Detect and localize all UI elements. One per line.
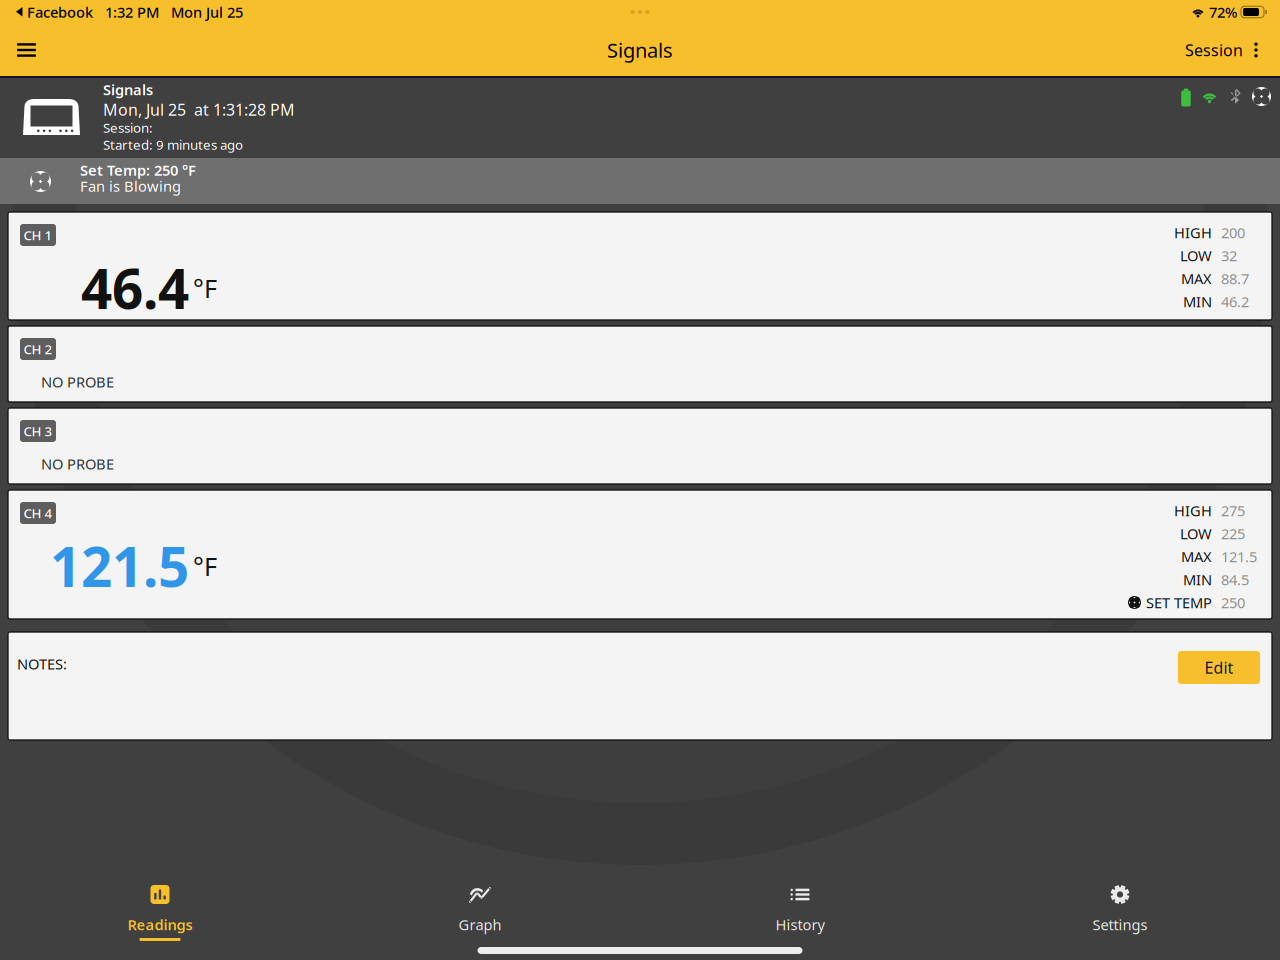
staticText: 84.5: [1221, 570, 1249, 589]
staticText: MIN: [1183, 292, 1212, 311]
staticText: MAX: [1181, 269, 1212, 288]
staticText: CH 4: [23, 504, 52, 522]
staticText: MAX: [1181, 547, 1212, 566]
staticText: 121.5: [50, 529, 189, 602]
staticText: History: [775, 915, 824, 934]
staticText: 88.7: [1221, 269, 1249, 288]
button[interactable]: Edit: [1178, 651, 1260, 684]
button[interactable]: Session: [1185, 31, 1258, 69]
staticText: 1:32 PM: [93, 2, 159, 22]
staticText: 72%: [1209, 2, 1237, 22]
staticText: Settings: [1092, 915, 1147, 934]
staticText: Set Temp: 250 °F: [80, 160, 196, 180]
staticText: Session: [1185, 39, 1243, 61]
staticText: Graph: [458, 915, 501, 934]
staticText: LOW: [1180, 246, 1212, 265]
staticText: 200: [1221, 223, 1245, 242]
staticText: °F: [193, 549, 217, 583]
button[interactable]: Settings: [960, 875, 1280, 960]
staticText: NOTES:: [17, 654, 67, 673]
staticText: Mon, Jul 25 at 1:31:28 PM: [103, 99, 295, 120]
staticText: 121.5: [1221, 547, 1257, 566]
staticText: HIGH: [1174, 223, 1212, 242]
staticText: Readings: [127, 915, 192, 934]
staticText: NO PROBE: [41, 454, 114, 473]
staticText: Started: 9 minutes ago: [103, 136, 243, 153]
staticText: CH 3: [23, 422, 52, 440]
staticText: Signals: [103, 80, 153, 99]
staticText: 32: [1221, 246, 1237, 265]
staticText: 46.2: [1221, 292, 1249, 311]
staticText: °F: [193, 271, 217, 305]
staticText: MIN: [1183, 570, 1212, 589]
staticText: NO PROBE: [41, 372, 114, 391]
staticText: SET TEMP: [1146, 593, 1212, 612]
staticText: Edit: [1204, 657, 1233, 678]
staticText: Signals: [607, 37, 673, 63]
staticText: 225: [1221, 524, 1245, 543]
staticText: 275: [1221, 501, 1245, 520]
staticText: Mon Jul 25: [159, 2, 243, 22]
button[interactable]: History: [640, 875, 960, 960]
staticText: 46.4: [81, 251, 189, 324]
staticText: Session:: [103, 119, 153, 136]
button[interactable]: Graph: [320, 875, 640, 960]
staticText: CH 2: [23, 340, 52, 358]
staticText: CH 1: [23, 226, 52, 244]
button[interactable]: Readings: [0, 875, 320, 960]
staticText: HIGH: [1174, 501, 1212, 520]
staticText: Fan is Blowing: [80, 176, 181, 196]
button[interactable]: Menu: [8, 34, 45, 65]
staticText: LOW: [1180, 524, 1212, 543]
staticText: Facebook: [23, 2, 93, 22]
staticText: 250: [1221, 593, 1245, 612]
